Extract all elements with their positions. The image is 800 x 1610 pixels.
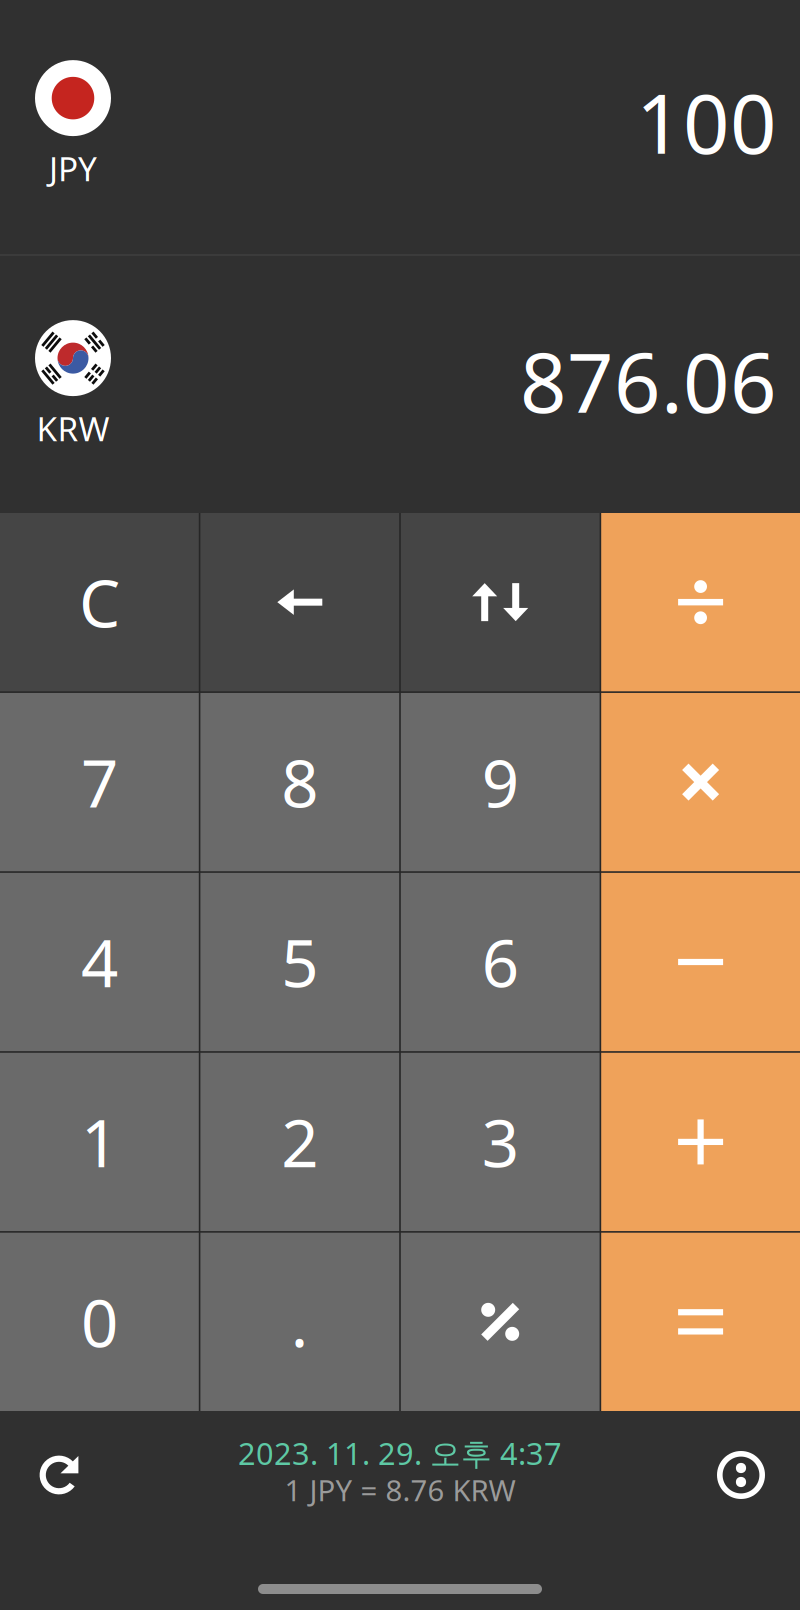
staticText: 0 (81, 1278, 118, 1365)
button[interactable]: 5 (200, 873, 399, 1051)
button[interactable]: More options (701, 1435, 781, 1515)
staticText: KRW (36, 406, 109, 450)
staticText: 2 (281, 1098, 318, 1185)
button[interactable]: JPY (0, 0, 800, 254)
button[interactable]: KRW (0, 256, 800, 513)
button[interactable]: Equals (601, 1233, 800, 1411)
staticText: C (79, 559, 120, 646)
staticText: 2023. 11. 29. 오후 4:37 (238, 1433, 562, 1473)
button[interactable]: 7 (0, 693, 199, 871)
button[interactable]: 4 (0, 873, 199, 1051)
staticText: . (291, 1278, 309, 1365)
staticText: 6 (482, 919, 519, 1005)
staticText: 8 (281, 739, 318, 825)
button[interactable]: 0 (0, 1233, 199, 1411)
staticText: 100 (636, 68, 777, 176)
button[interactable]: Multiply (601, 693, 800, 871)
staticText: 5 (281, 919, 318, 1005)
staticText: 9 (482, 739, 519, 825)
button[interactable]: Divide (601, 513, 800, 691)
button[interactable]: Backspace (200, 513, 399, 691)
staticText: 3 (482, 1098, 519, 1185)
button[interactable]: 9 (401, 693, 600, 871)
staticText: JPY (49, 146, 97, 190)
button[interactable]: . (200, 1233, 399, 1411)
button[interactable]: Subtract (601, 873, 800, 1051)
button[interactable]: 8 (200, 693, 399, 871)
staticText: 1 JPY = 8.76 KRW (284, 1470, 515, 1509)
button[interactable]: Swap currencies (401, 513, 600, 691)
button[interactable]: Clear (0, 513, 199, 691)
staticText: 876.06 (520, 327, 777, 435)
staticText: 4 (81, 919, 118, 1005)
staticText: 7 (81, 739, 118, 825)
button[interactable]: Percent (401, 1233, 600, 1411)
button[interactable]: 1 (0, 1053, 199, 1231)
button[interactable]: 2 (200, 1053, 399, 1231)
button[interactable]: Refresh exchange rate (19, 1435, 99, 1515)
button[interactable]: Add (601, 1053, 800, 1231)
button[interactable]: 6 (401, 873, 600, 1051)
staticText: 1 (81, 1098, 118, 1185)
button[interactable]: 3 (401, 1053, 600, 1231)
